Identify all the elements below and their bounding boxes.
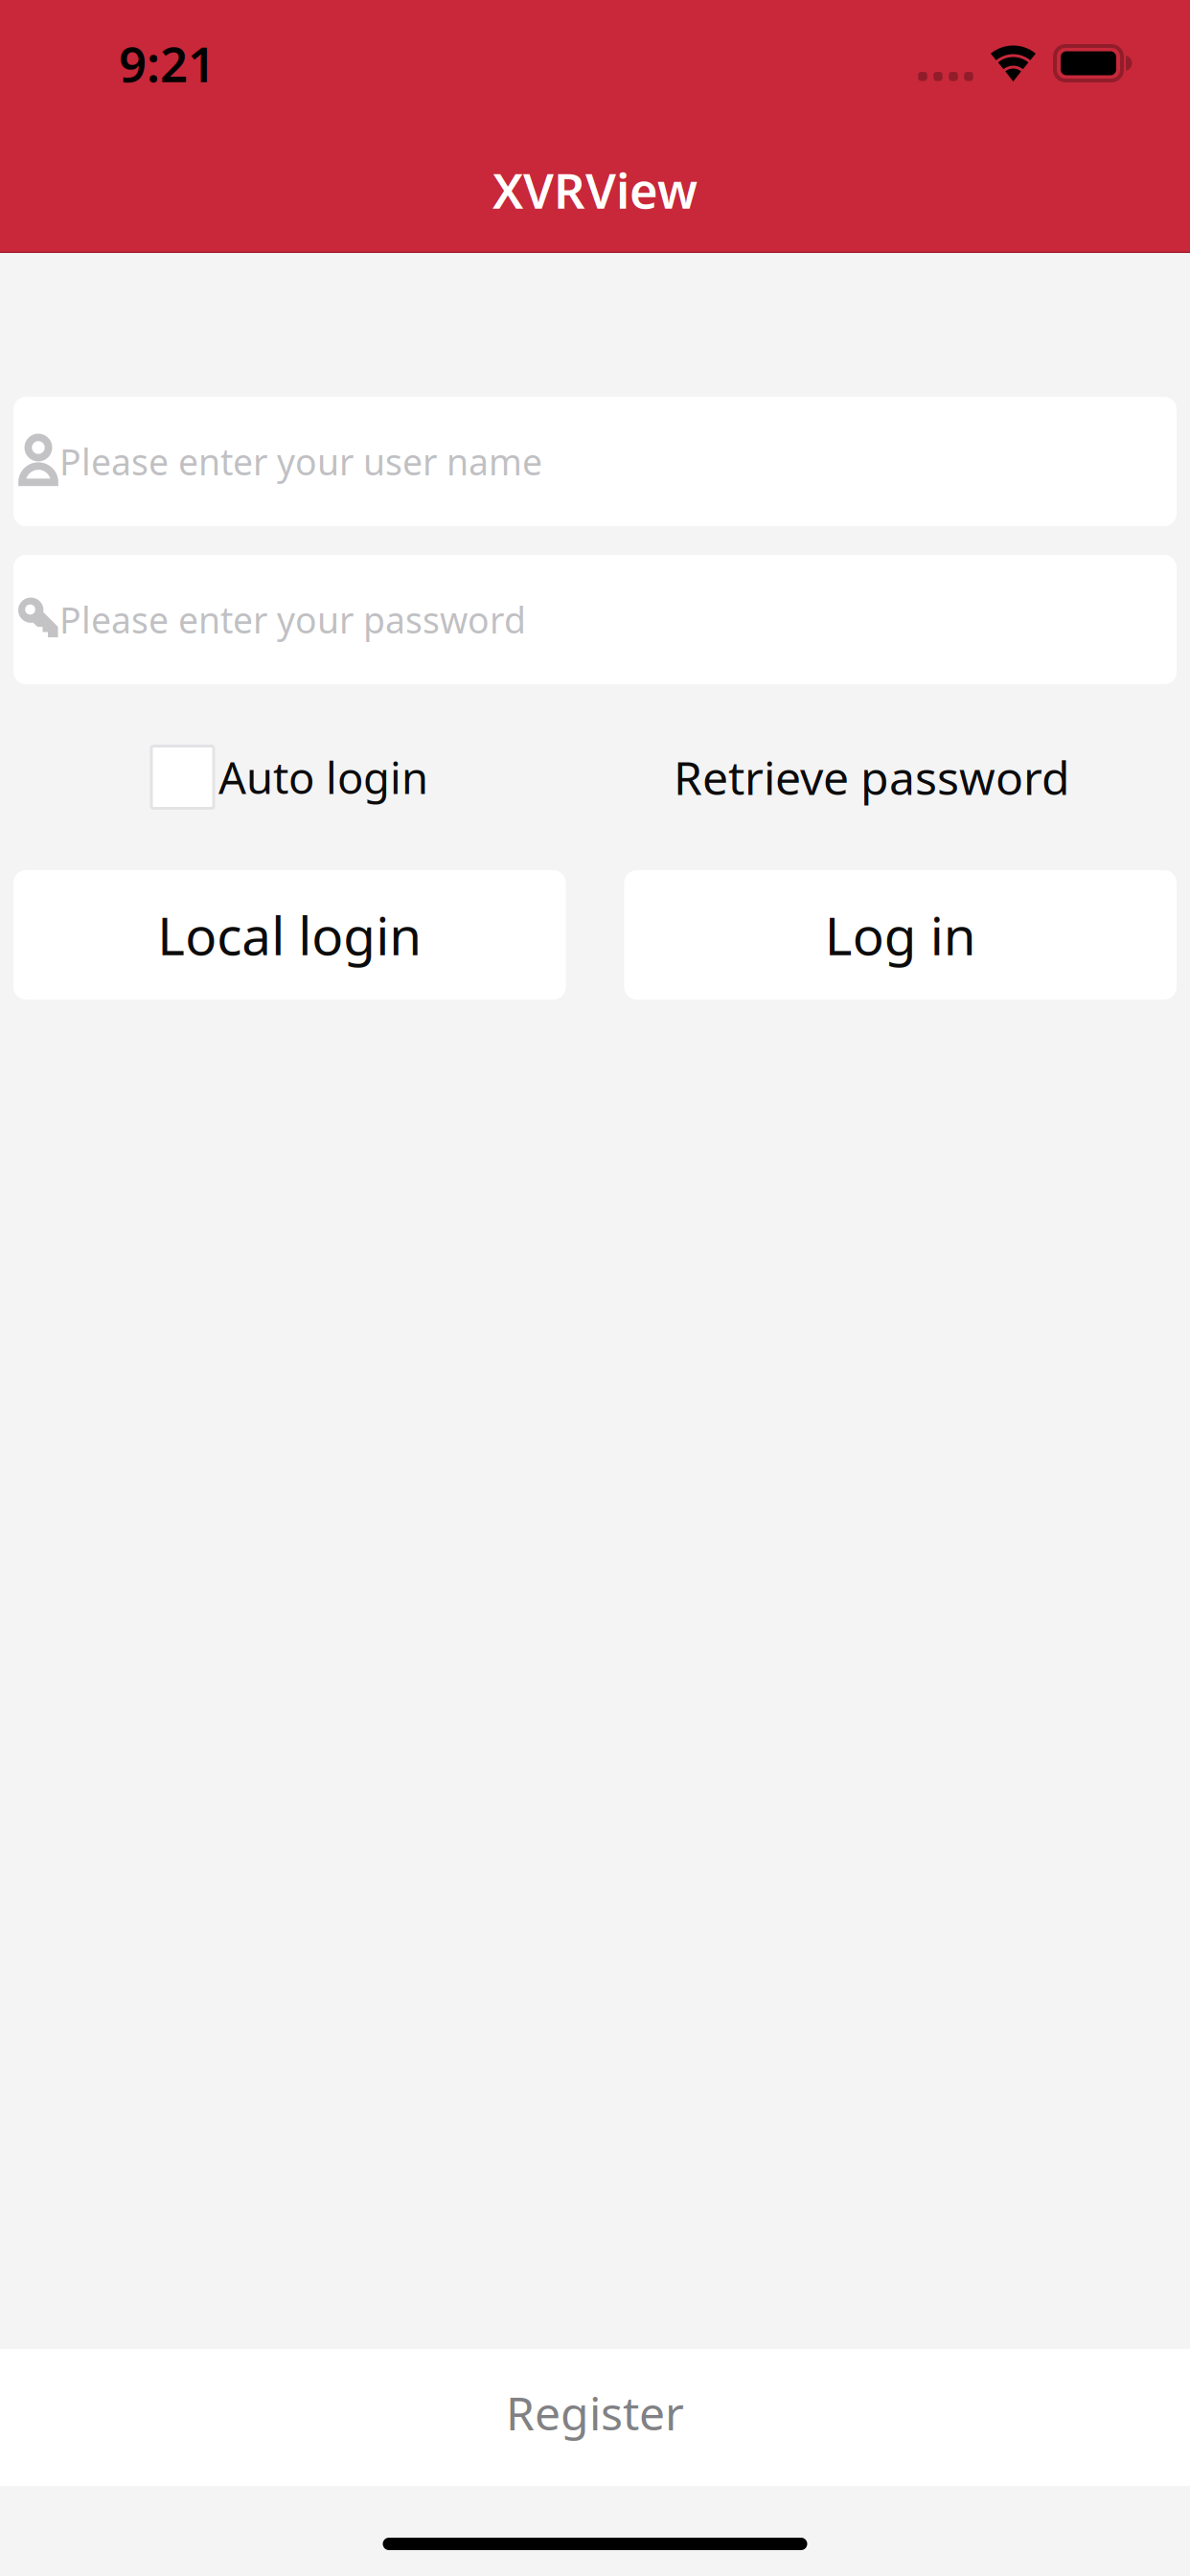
button[interactable]: Register <box>0 2349 1190 2486</box>
staticText: Auto login <box>218 748 428 806</box>
staticText: 9:21 <box>119 31 216 96</box>
button[interactable]: Auto login <box>151 746 428 808</box>
staticText: Local login <box>157 900 422 970</box>
staticText: Log in <box>825 900 976 970</box>
button[interactable]: Local login <box>13 870 566 1000</box>
staticText: Please enter your password <box>59 596 526 643</box>
button[interactable]: Retrieve password <box>674 747 1070 808</box>
button[interactable]: Log in <box>624 870 1177 1000</box>
staticText: Register <box>506 2382 684 2443</box>
staticText: XVRView <box>492 158 698 222</box>
staticText: Retrieve password <box>674 747 1070 808</box>
staticText: Please enter your user name <box>59 438 542 485</box>
